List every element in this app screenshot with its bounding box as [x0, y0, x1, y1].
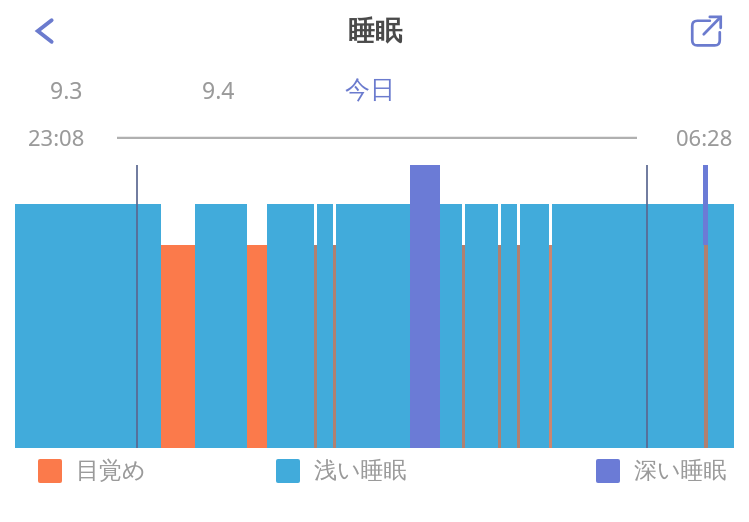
staticText: 9.3 [50, 74, 83, 105]
button[interactable]: 目覚め [34, 452, 150, 489]
staticText: 目覚め [76, 456, 146, 485]
button[interactable] [0, 157, 749, 447]
button[interactable]: 深い睡眠 [592, 452, 731, 489]
staticText: 浅い睡眠 [314, 456, 407, 485]
button[interactable]: 9.3 [40, 68, 93, 111]
button[interactable]: Share [683, 8, 729, 54]
staticText: 深い睡眠 [634, 456, 727, 485]
staticText: 今日 [345, 74, 395, 105]
button[interactable]: 今日 [335, 68, 405, 111]
staticText: 睡眠 [348, 14, 402, 48]
staticText: 9.4 [202, 74, 235, 105]
staticText: 23:08 [28, 122, 85, 152]
staticText: 06:28 [676, 122, 733, 152]
button[interactable]: 浅い睡眠 [272, 452, 411, 489]
button[interactable]: 9.4 [192, 68, 245, 111]
button[interactable]: Back [22, 8, 68, 54]
